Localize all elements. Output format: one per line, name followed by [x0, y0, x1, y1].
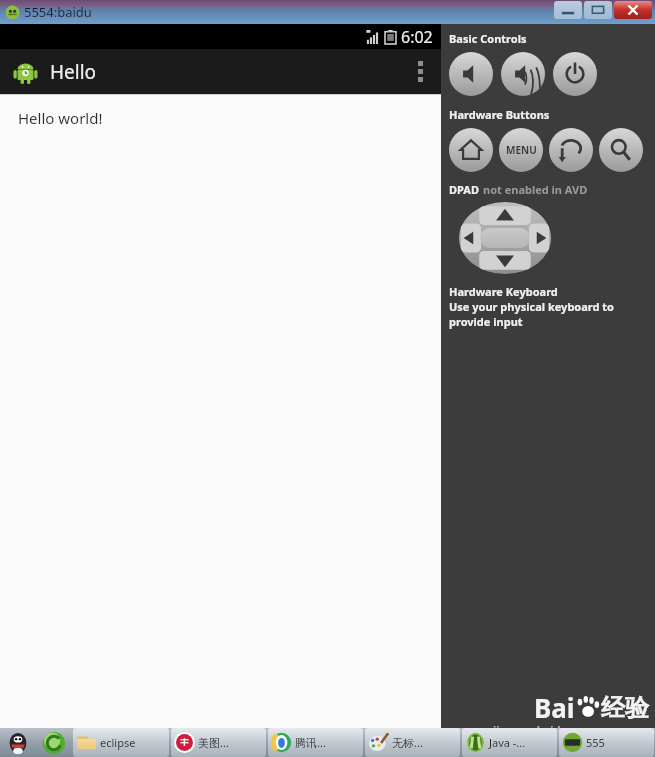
- staticText: 美图...: [198, 735, 229, 750]
- button[interactable]: Volume down: [449, 52, 493, 96]
- staticText: Bai: [534, 690, 575, 725]
- button[interactable]: Close: [614, 1, 652, 19]
- button[interactable]: Volume up: [501, 52, 545, 96]
- button[interactable]: Tray icon: [6, 731, 30, 755]
- staticText: Use your physical keyboard to provide in…: [449, 299, 655, 329]
- staticText: 腾讯...: [295, 735, 326, 750]
- button[interactable]: 555: [559, 728, 654, 757]
- staticText: MENU: [506, 143, 537, 157]
- staticText: 555: [586, 735, 605, 750]
- button[interactable]: Java -...: [462, 728, 557, 757]
- staticText: 无标...: [392, 735, 423, 750]
- button[interactable]: 腾讯...: [268, 728, 363, 757]
- button[interactable]: Search: [599, 128, 643, 172]
- staticText: DPAD: [449, 182, 479, 197]
- button[interactable]: More options: [399, 49, 441, 94]
- staticText: 5554:baidu: [24, 3, 92, 21]
- staticText: Hardware Buttons: [449, 107, 550, 122]
- button[interactable]: 美图...: [171, 728, 266, 757]
- button[interactable]: Minimize: [554, 1, 582, 19]
- button[interactable]: Tray icon: [42, 731, 66, 755]
- staticText: Hello world!: [18, 108, 103, 128]
- staticText: Hardware Keyboard: [449, 284, 558, 299]
- button[interactable]: eclipse: [73, 728, 169, 757]
- button[interactable]: Power: [553, 52, 597, 96]
- staticText: jingyan.baidu.com: [493, 722, 595, 737]
- button[interactable]: 无标...: [365, 728, 460, 757]
- staticText: Hello: [50, 59, 97, 85]
- button[interactable]: D-pad: [459, 202, 551, 274]
- staticText: Basic Controls: [449, 31, 527, 46]
- button[interactable]: Maximize: [584, 1, 612, 19]
- button[interactable]: Back: [549, 128, 593, 172]
- staticText: Java -...: [489, 735, 526, 750]
- staticText: not enabled in AVD: [483, 182, 588, 197]
- button[interactable]: Home: [449, 128, 493, 172]
- button[interactable]: Menu: [499, 128, 543, 172]
- staticText: eclipse: [100, 735, 136, 750]
- staticText: 经验: [601, 693, 649, 723]
- staticText: 6:02: [401, 26, 433, 48]
